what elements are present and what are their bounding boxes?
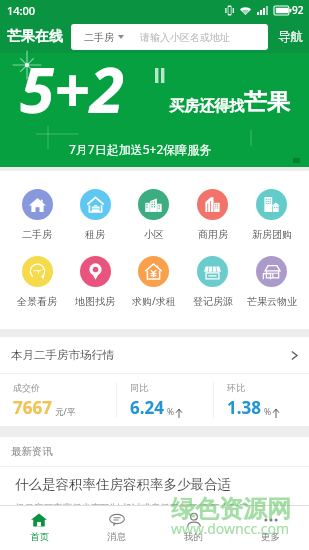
button[interactable]: 二手房 <box>8 189 66 241</box>
staticText: 地图找房 <box>75 295 115 308</box>
button[interactable]: 新房团购 <box>242 189 301 241</box>
staticText: 5+2 <box>20 47 124 131</box>
staticText: 首页 <box>30 531 49 543</box>
staticText: 二手房 <box>84 31 114 44</box>
staticText: 新房团购 <box>252 228 292 241</box>
staticText: 小区 <box>144 228 164 241</box>
staticText: 最新资讯 <box>11 445 53 458</box>
staticText: 全景看房 <box>17 295 57 308</box>
button[interactable]: 首页 <box>0 506 78 550</box>
staticText: 我的 <box>184 531 203 543</box>
staticText: 租房 <box>85 228 105 241</box>
staticText: 绿色资源网 <box>171 494 291 524</box>
staticText: 芒果在线 <box>7 28 63 46</box>
staticText: 7月7日起加送5+2保障服务 <box>69 141 212 157</box>
staticText: 成交价 <box>13 382 40 393</box>
staticText: 环比 <box>227 382 245 393</box>
staticText: 更多 <box>261 531 280 543</box>
staticText: 求购/求租 <box>132 294 176 308</box>
staticText: 消息 <box>107 531 126 543</box>
staticText: 商用房 <box>198 228 228 241</box>
staticText: 7667 <box>13 396 52 419</box>
staticText: 92 <box>292 3 304 17</box>
button[interactable]: 我的 <box>155 506 232 550</box>
staticText: % <box>167 406 175 418</box>
staticText: 14:00 <box>7 3 36 18</box>
button[interactable]: 租房 <box>66 189 124 241</box>
button[interactable]: 更多 <box>232 506 309 550</box>
button[interactable]: 求购/求租 <box>124 256 183 308</box>
button[interactable]: 芒果云物业 <box>242 256 301 308</box>
staticText: 买房还得找 <box>169 97 244 116</box>
button[interactable]: 全景看房 <box>8 256 66 308</box>
staticText: 但是容积率高低也有限制,超过或者低于都不好,那么到底... <box>15 501 256 514</box>
staticText: 本月二手房市场行情 <box>11 348 115 362</box>
button[interactable]: 导航 <box>276 24 305 50</box>
button[interactable]: 商用房 <box>183 189 242 241</box>
staticText: 芒果 <box>244 88 290 117</box>
staticText: 登记房源 <box>193 295 233 308</box>
staticText: 1.38 <box>227 396 261 419</box>
staticText: www.downcc.com <box>171 519 290 538</box>
staticText: 导航 <box>278 29 303 45</box>
staticText: 芒果云物业 <box>247 295 297 308</box>
button[interactable]: 二手房 <box>71 24 268 50</box>
button[interactable]: 地图找房 <box>66 256 124 308</box>
staticText: 什么是容积率住房容积率多少最合适 <box>15 476 231 493</box>
button[interactable]: 本月二手房市场行情 <box>0 337 309 373</box>
staticText: % <box>264 406 272 418</box>
staticText: 二手房 <box>22 228 52 241</box>
button[interactable]: 小区 <box>124 189 183 241</box>
staticText: 同比 <box>130 382 148 393</box>
staticText: 请输入小区名或地址 <box>140 31 230 44</box>
staticText: 6.24 <box>130 396 164 419</box>
button[interactable]: 什么是容积率住房容积率多少最合适 <box>0 467 309 524</box>
button[interactable]: 登记房源 <box>183 256 242 308</box>
other: 查看市场行情 <box>291 350 298 361</box>
button[interactable]: 消息 <box>78 506 155 550</box>
staticText: 元/平 <box>55 406 76 418</box>
